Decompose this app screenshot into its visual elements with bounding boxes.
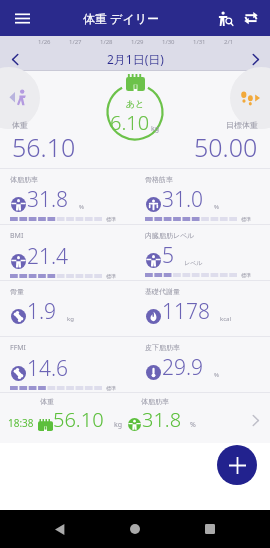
staticText: 21.4 bbox=[27, 242, 69, 271]
button[interactable]: 皮下脂肪率 bbox=[135, 337, 270, 392]
staticText: 31.0 bbox=[162, 185, 204, 214]
staticText: 標準 bbox=[106, 216, 116, 222]
staticText: 基礎代謝量 bbox=[145, 287, 180, 296]
staticText: kg bbox=[151, 124, 160, 134]
button[interactable]: 骨格筋率 bbox=[135, 169, 270, 224]
staticText: 1/30 bbox=[162, 38, 175, 46]
button[interactable]: Sync bbox=[238, 5, 264, 31]
staticText: 1.9 bbox=[27, 297, 57, 326]
button[interactable]: 内臓脂肪レベル bbox=[135, 225, 270, 280]
staticText: FFMI bbox=[10, 343, 26, 353]
staticText: 31.8 bbox=[27, 185, 69, 214]
staticText: % bbox=[190, 420, 196, 430]
button[interactable]: FFMI bbox=[0, 337, 135, 392]
staticText: 1178 bbox=[162, 297, 210, 326]
staticText: 56.10 bbox=[53, 406, 104, 433]
staticText: 体重 bbox=[40, 397, 54, 406]
staticText: 1/31 bbox=[193, 38, 206, 46]
staticText: 皮下脂肪率 bbox=[145, 343, 180, 352]
staticText: 31.8 bbox=[142, 406, 182, 433]
staticText: 6.10 bbox=[110, 109, 150, 136]
staticText: レベル bbox=[184, 259, 203, 267]
staticText: 体重 デイリー bbox=[83, 10, 159, 26]
staticText: 骨格筋率 bbox=[145, 175, 173, 184]
button[interactable]: Recents bbox=[198, 517, 222, 541]
staticText: あと bbox=[126, 98, 145, 109]
staticText: 1/29 bbox=[131, 38, 144, 46]
staticText: 29.9 bbox=[162, 353, 204, 382]
staticText: 体重 bbox=[12, 120, 28, 130]
staticText: 14.6 bbox=[27, 354, 69, 383]
staticText: 骨量 bbox=[10, 287, 24, 296]
staticText: 2/1 bbox=[224, 38, 234, 46]
button[interactable]: 体脂肪率 bbox=[0, 169, 135, 224]
staticText: % bbox=[79, 203, 84, 211]
staticText: kg bbox=[67, 315, 74, 323]
staticText: 標準 bbox=[106, 385, 116, 391]
staticText: BMI bbox=[10, 231, 24, 241]
button[interactable]: Next day bbox=[240, 48, 270, 70]
button[interactable]: Activity bbox=[0, 67, 40, 129]
staticText: 内臓脂肪レベル bbox=[145, 231, 195, 240]
button[interactable]: Back bbox=[48, 517, 72, 541]
staticText: 18:38 bbox=[8, 416, 34, 430]
staticText: % bbox=[214, 203, 219, 211]
staticText: 目標体重 bbox=[226, 120, 258, 130]
staticText: 標準 bbox=[241, 216, 251, 222]
button[interactable]: Add bbox=[217, 445, 257, 485]
staticText: 1/26 bbox=[38, 38, 51, 46]
staticText: 体脂肪率 bbox=[141, 397, 169, 406]
button[interactable]: 体重 bbox=[0, 393, 270, 443]
staticText: 標準 bbox=[241, 272, 251, 278]
staticText: kg bbox=[114, 420, 123, 430]
button[interactable]: Previous day bbox=[0, 48, 30, 70]
button[interactable]: Steps bbox=[230, 67, 270, 129]
button[interactable]: BMI bbox=[0, 225, 135, 280]
button[interactable]: Menu bbox=[8, 4, 36, 32]
staticText: 56.10 bbox=[12, 130, 76, 164]
staticText: 標準 bbox=[106, 273, 116, 279]
staticText: % bbox=[214, 371, 219, 379]
staticText: 5 bbox=[162, 241, 174, 270]
staticText: 2月1日(日) bbox=[107, 51, 164, 67]
button[interactable]: Search person bbox=[212, 5, 238, 31]
staticText: 1/28 bbox=[100, 38, 113, 46]
staticText: kcal bbox=[220, 315, 231, 323]
button[interactable]: 基礎代謝量 bbox=[135, 281, 270, 336]
staticText: 1/27 bbox=[69, 38, 82, 46]
staticText: 50.00 bbox=[194, 130, 258, 164]
button[interactable]: Home bbox=[123, 517, 147, 541]
staticText: 体脂肪率 bbox=[10, 175, 38, 184]
button[interactable]: 骨量 bbox=[0, 281, 135, 336]
